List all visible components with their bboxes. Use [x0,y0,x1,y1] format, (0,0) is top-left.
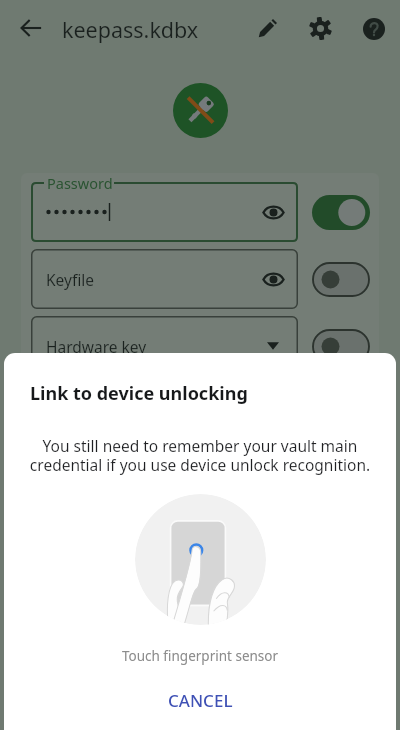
button[interactable]: Help [347,2,400,55]
button[interactable]: Expand [258,331,288,361]
button[interactable]: KeePass logo [173,83,228,138]
staticText: keepass.kdbx [62,15,199,44]
staticText: Other option [46,403,258,424]
button[interactable]: Back [7,4,55,52]
button[interactable]: Settings [294,2,347,55]
staticText: Hardware key [46,336,258,357]
button[interactable]: Switch off [312,262,370,297]
button[interactable]: Edit entry [241,2,294,55]
button[interactable]: Switch on [312,195,370,230]
staticText: Touch fingerprint sensor [4,647,396,665]
button[interactable]: Show keyfile [258,264,288,294]
button[interactable]: Switch off [312,329,370,364]
button[interactable]: CANCEL [4,683,396,718]
staticText: Link to device unlocking [30,381,248,406]
staticText: You still need to remember your vault ma… [16,435,384,475]
staticText: CANCEL [168,689,233,712]
staticText: Password [47,173,113,193]
staticText: Keyfile [46,269,258,290]
button[interactable]: Show password [258,197,288,227]
